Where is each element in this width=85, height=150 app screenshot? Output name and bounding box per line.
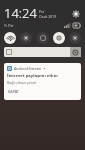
staticText: Tr Pzt <box>4 23 14 28</box>
button[interactable]: Android Sistemi <box>4 63 81 100</box>
button[interactable]: Bluetooth <box>20 32 32 44</box>
button[interactable]: Settings <box>70 8 81 19</box>
staticText: Ocak 2019 <box>39 14 57 19</box>
staticText: Android Sistemi <box>14 66 42 71</box>
staticText: İnternet paylaşımı etkin <box>7 73 58 79</box>
button[interactable]: KAPAT <box>7 88 20 95</box>
button[interactable]: Settings tile <box>69 32 81 44</box>
staticText: Bağlı cihazı yönet <box>7 80 37 85</box>
button[interactable]: Search <box>4 47 81 57</box>
button[interactable]: Wi-Fi <box>4 32 16 44</box>
button[interactable]: Voice search <box>70 47 81 57</box>
button[interactable]: Flashlight <box>53 32 65 44</box>
staticText: KAPAT <box>8 89 19 94</box>
staticText: 14:24 <box>4 4 37 22</box>
button[interactable]: Battery saver <box>37 32 49 44</box>
staticText: Pzt <box>39 9 45 14</box>
